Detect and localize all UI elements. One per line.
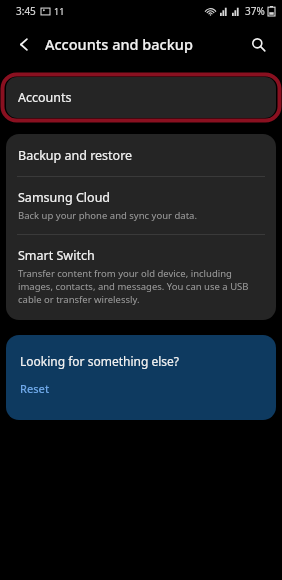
staticText: Back up your phone and sync your data. (18, 209, 197, 222)
staticText: Looking for something else? (20, 353, 180, 369)
button[interactable]: Reset (20, 381, 50, 396)
button[interactable]: Search (242, 28, 274, 60)
staticText: Transfer content from your old device, i… (18, 267, 262, 306)
staticText: 3:45 (16, 4, 36, 18)
staticText: Accounts (18, 89, 72, 106)
staticText: Backup and restore (18, 147, 133, 164)
staticText: Samsung Cloud (18, 189, 111, 206)
staticText: Accounts and backup (45, 34, 193, 54)
button[interactable]: Accounts (6, 77, 276, 118)
button[interactable]: Backup and restore (6, 134, 276, 176)
button[interactable]: Back (8, 28, 40, 60)
button[interactable]: Samsung Cloud (6, 177, 276, 234)
staticText: 11 (54, 5, 65, 17)
staticText: Smart Switch (18, 247, 95, 264)
button[interactable]: Smart Switch (6, 235, 276, 320)
staticText: Reset (20, 381, 50, 396)
staticText: 37% (245, 4, 265, 18)
